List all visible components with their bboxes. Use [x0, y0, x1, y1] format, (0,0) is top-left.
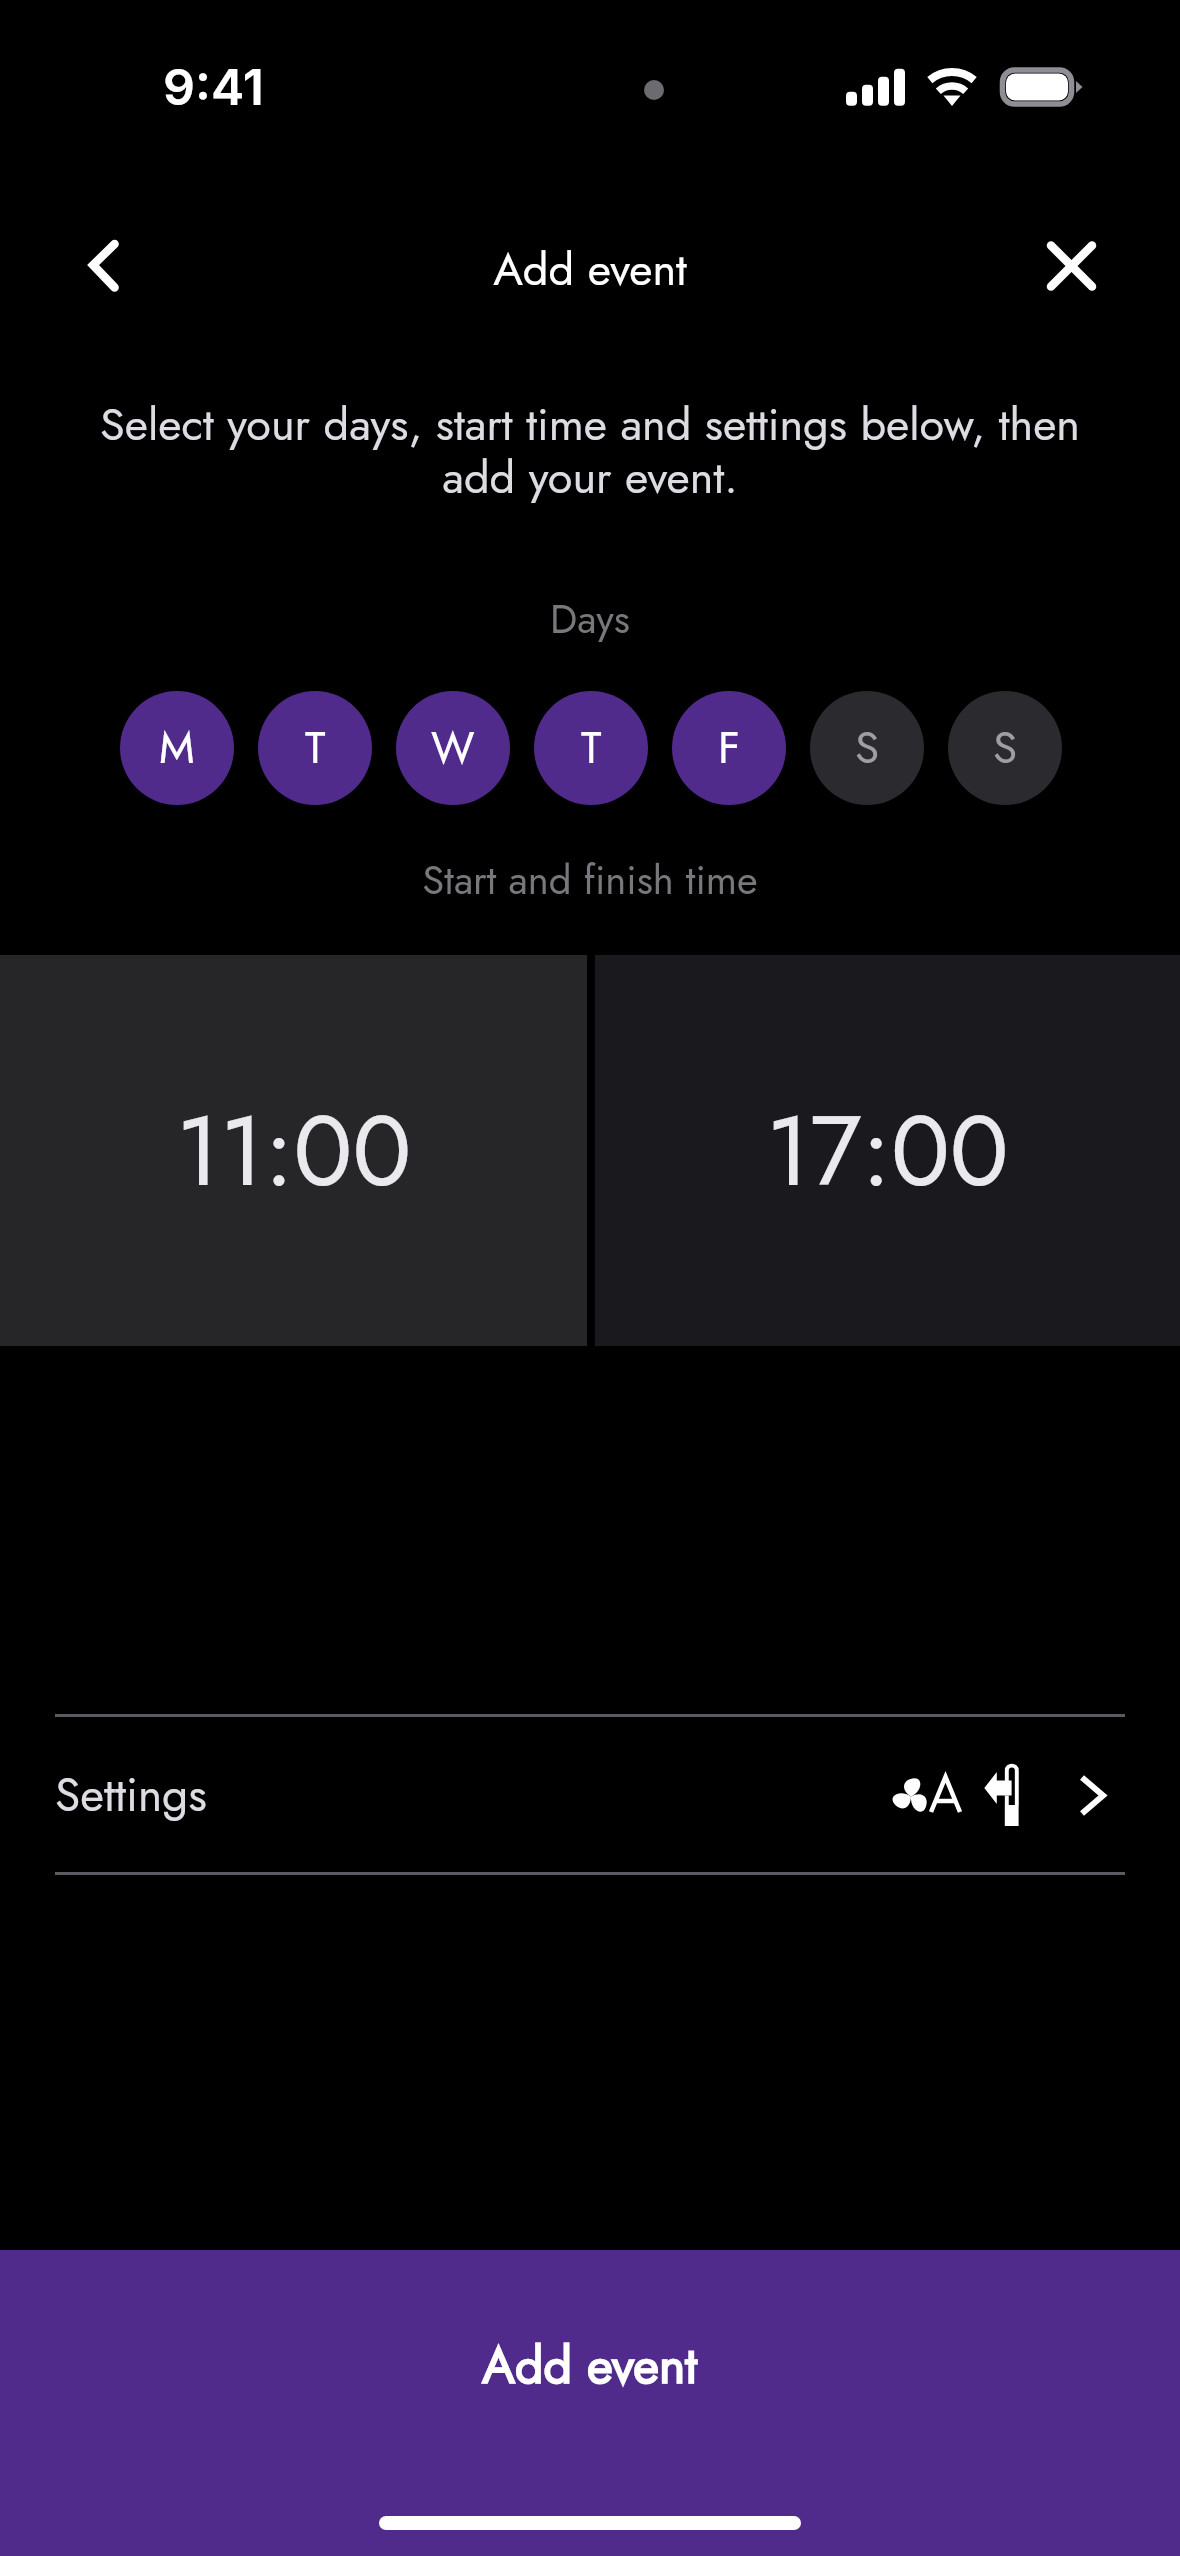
staticText: M: [159, 716, 195, 780]
staticText: W: [431, 716, 475, 780]
staticText: Add event: [482, 2329, 698, 2401]
button[interactable]: Add event: [0, 2250, 1180, 2556]
button[interactable]: T: [534, 691, 648, 805]
button[interactable]: S: [948, 691, 1062, 805]
button[interactable]: F: [672, 691, 786, 805]
button[interactable]: T: [258, 691, 372, 805]
staticText: Add event: [0, 237, 1180, 302]
staticText: 17:00: [766, 1080, 1009, 1222]
staticText: 11:00: [176, 1080, 412, 1222]
button[interactable]: Close: [1016, 210, 1128, 322]
staticText: F: [718, 716, 740, 780]
button[interactable]: Back: [47, 210, 159, 322]
staticText: 9:41: [163, 57, 264, 117]
staticText: S: [855, 716, 880, 780]
button[interactable]: M: [120, 691, 234, 805]
button[interactable]: 11:00: [0, 955, 587, 1346]
button[interactable]: S: [810, 691, 924, 805]
button[interactable]: 17:00: [595, 955, 1180, 1346]
staticText: T: [305, 716, 326, 780]
staticText: Days: [0, 590, 1180, 648]
staticText: Select your days, start time and setting…: [20, 392, 1160, 509]
button[interactable]: Settings: [0, 1716, 1180, 1873]
staticText: Start and finish time: [0, 851, 1180, 909]
staticText: S: [993, 716, 1018, 780]
staticText: T: [581, 716, 602, 780]
staticText: Settings: [55, 1762, 207, 1828]
button[interactable]: W: [396, 691, 510, 805]
